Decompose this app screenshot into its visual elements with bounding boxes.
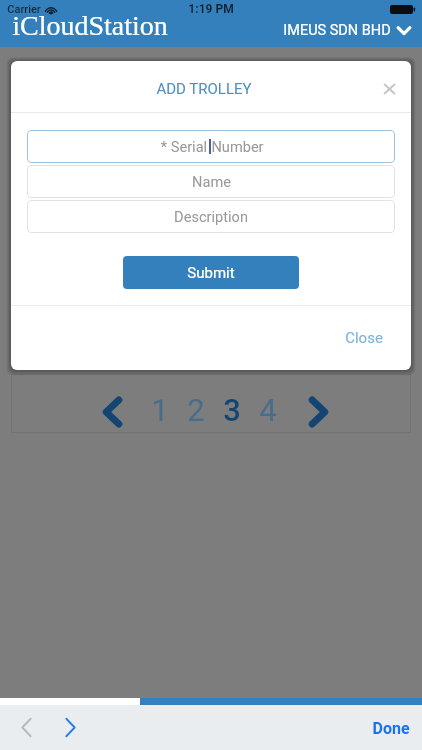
button[interactable]: Close: [345, 329, 383, 347]
staticText: Number: [211, 138, 264, 155]
staticText: 4: [259, 392, 277, 428]
button[interactable]: 1: [142, 390, 178, 430]
button[interactable]: Submit: [123, 256, 299, 289]
staticText: 3: [223, 392, 241, 428]
button[interactable]: Next page: [301, 395, 335, 429]
button[interactable]: * Serial: [27, 130, 395, 163]
button[interactable]: Previous field: [6, 707, 46, 747]
button[interactable]: Previous page: [95, 395, 129, 429]
staticText: Description: [174, 208, 248, 225]
staticText: Submit: [187, 264, 235, 282]
button[interactable]: Name: [27, 165, 395, 198]
button[interactable]: Close dialog: [375, 75, 403, 103]
staticText: Name: [192, 173, 231, 190]
staticText: * Serial: [159, 138, 209, 155]
staticText: IMEUS SDN BHD: [283, 22, 391, 39]
staticText: Carrier: [7, 3, 41, 16]
button[interactable]: Description: [27, 200, 395, 233]
staticText: Done: [372, 719, 410, 738]
button[interactable]: 3: [214, 390, 250, 430]
staticText: 1:19 PM: [188, 2, 234, 16]
button[interactable]: Done: [372, 719, 410, 738]
staticText: ADD TROLLEY: [156, 80, 252, 98]
button[interactable]: 2: [178, 390, 214, 430]
button[interactable]: IMEUS SDN BHD: [283, 22, 411, 39]
button[interactable]: 4: [250, 390, 286, 430]
staticText: Close: [345, 329, 383, 347]
staticText: 1: [151, 392, 169, 428]
staticText: 2: [187, 392, 205, 428]
button[interactable]: Next field: [50, 707, 90, 747]
staticText: iCloudStation: [12, 10, 168, 41]
